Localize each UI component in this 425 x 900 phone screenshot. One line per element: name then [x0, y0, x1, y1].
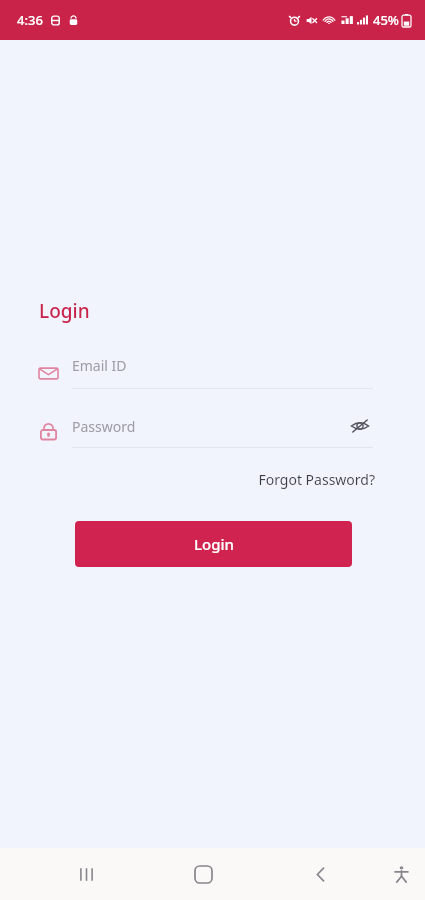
button[interactable]: Login — [75, 521, 352, 567]
staticText: Login — [39, 298, 90, 324]
staticText: Email ID — [72, 356, 127, 375]
button[interactable]: Show password — [347, 413, 373, 439]
button[interactable]: Accessibility — [377, 850, 425, 898]
button[interactable]: Email ID — [36, 356, 373, 389]
staticText: Login — [194, 534, 234, 554]
button[interactable]: Password — [36, 413, 373, 448]
staticText: 4:36 — [17, 11, 43, 29]
button[interactable]: Recents — [62, 850, 110, 898]
staticText: 45% — [373, 11, 399, 29]
button[interactable]: Home — [179, 850, 227, 898]
button[interactable]: Back — [297, 850, 345, 898]
staticText: Password — [72, 417, 347, 436]
button[interactable]: Forgot Password? — [258, 468, 375, 491]
